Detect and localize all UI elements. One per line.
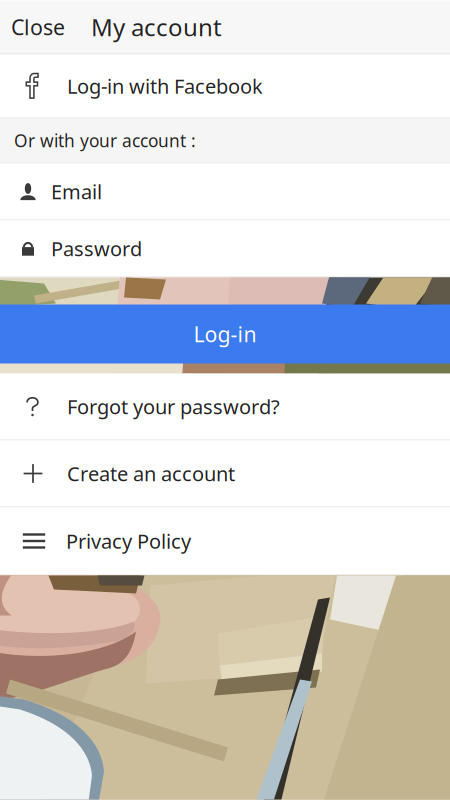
button[interactable]: Create an account (0, 440, 450, 507)
button[interactable]: Close (0, 0, 76, 53)
staticText: Close (11, 13, 65, 41)
staticText: Privacy Policy (66, 528, 191, 554)
button[interactable]: Log-in (0, 304, 450, 363)
staticText: Or with your account : (14, 129, 196, 152)
staticText: Create an account (67, 460, 235, 487)
button[interactable]: Forgot your password? (0, 373, 450, 440)
staticText: Forgot your password? (67, 393, 280, 420)
button[interactable]: Privacy Policy (0, 507, 450, 575)
staticText: Email (51, 178, 102, 205)
button[interactable]: Log-in with Facebook (0, 54, 450, 118)
button[interactable]: Email (0, 163, 450, 220)
staticText: Log-in (193, 320, 256, 348)
button[interactable]: My account (76, 0, 222, 53)
staticText: Log-in with Facebook (67, 73, 263, 99)
staticText: Password (51, 235, 142, 262)
staticText: My account (91, 11, 222, 43)
button[interactable]: Password (0, 220, 450, 277)
